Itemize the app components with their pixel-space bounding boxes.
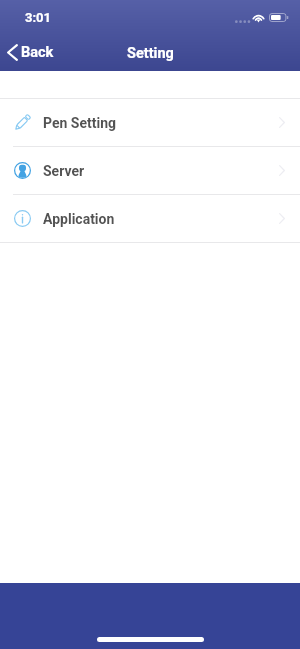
staticText: 3:01 bbox=[25, 10, 52, 25]
button[interactable]: Server bbox=[0, 147, 300, 194]
staticText: Pen Setting bbox=[43, 115, 117, 131]
other: Back bbox=[7, 44, 18, 61]
staticText: Application bbox=[43, 211, 115, 227]
staticText: Server bbox=[43, 163, 85, 179]
button[interactable]: Pen Setting bbox=[0, 99, 300, 146]
staticText: Setting bbox=[127, 45, 174, 62]
button[interactable]: Back bbox=[0, 40, 62, 64]
staticText: Back bbox=[21, 44, 54, 61]
button[interactable]: Application bbox=[0, 195, 300, 242]
